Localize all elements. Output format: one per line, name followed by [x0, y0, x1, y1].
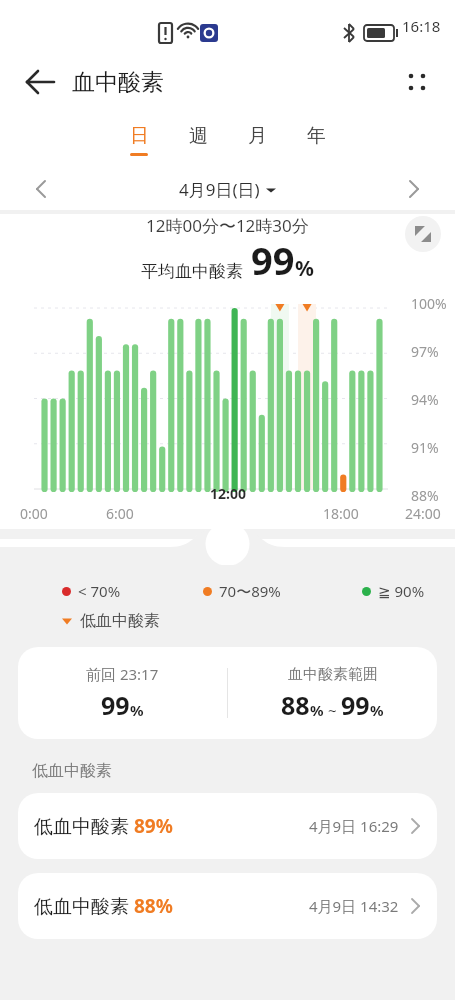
staticText: 月 — [248, 124, 267, 148]
staticText: % — [370, 700, 384, 720]
staticText: % — [310, 700, 324, 720]
staticText: 99 — [251, 234, 295, 286]
button[interactable]: 日 — [118, 124, 160, 156]
staticText: 12時00分〜12時30分 — [146, 214, 309, 237]
staticText: 低血中酸素 — [80, 611, 160, 631]
staticText: 日 — [130, 124, 149, 148]
staticText: 16:18 — [402, 16, 441, 36]
staticText: 低血中酸素 — [34, 813, 134, 839]
staticText: ~ — [324, 700, 341, 720]
staticText: 血中酸素 — [72, 68, 164, 97]
staticText: 6:00 — [106, 504, 134, 523]
button[interactable]: 月 — [236, 124, 278, 153]
button[interactable]: Previous day — [24, 172, 58, 206]
staticText: % — [295, 254, 314, 283]
staticText: ≧ 90% — [378, 581, 425, 601]
staticText: 70〜89% — [219, 581, 281, 601]
staticText: 低血中酸素 — [34, 893, 134, 919]
staticText: 週 — [189, 124, 208, 148]
staticText: 99 — [341, 688, 370, 722]
staticText: 89% — [134, 813, 173, 839]
staticText: % — [130, 700, 144, 720]
staticText: 18:00 — [323, 504, 359, 523]
staticText: 4月9日 14:32 — [309, 896, 399, 916]
button[interactable]: More options — [397, 62, 437, 102]
staticText: 88% — [411, 486, 439, 505]
staticText: 91% — [411, 438, 439, 457]
button[interactable]: 週 — [177, 124, 219, 153]
button[interactable]: 年 — [295, 124, 337, 153]
staticText: 4月9日 16:29 — [309, 816, 399, 836]
staticText: 24:00 — [405, 504, 441, 523]
staticText: 年 — [307, 124, 326, 148]
staticText: 平均血中酸素 — [141, 261, 243, 282]
button[interactable]: 4月9日(日) — [179, 178, 276, 201]
button[interactable]: Back — [20, 62, 60, 102]
staticText: 88% — [134, 893, 173, 919]
staticText: < 70% — [78, 581, 121, 601]
button[interactable]: Next day — [397, 172, 431, 206]
button[interactable]: 前回 23:17 — [18, 647, 437, 739]
staticText: 4月9日(日) — [179, 178, 260, 201]
staticText: 0:00 — [20, 504, 48, 523]
button[interactable]: 低血中酸素 — [18, 793, 437, 859]
staticText: 88 — [281, 688, 310, 722]
staticText: 前回 23:17 — [86, 664, 159, 684]
staticText: 12:00 — [210, 484, 246, 503]
button[interactable]: 低血中酸素 — [18, 873, 437, 939]
staticText: 血中酸素範囲 — [288, 665, 378, 684]
staticText: 97% — [411, 342, 439, 361]
button[interactable]: Fullscreen chart — [405, 216, 441, 252]
staticText: 100% — [411, 294, 447, 313]
staticText: 94% — [411, 390, 439, 409]
staticText: 低血中酸素 — [32, 761, 112, 781]
staticText: 99 — [101, 688, 130, 722]
